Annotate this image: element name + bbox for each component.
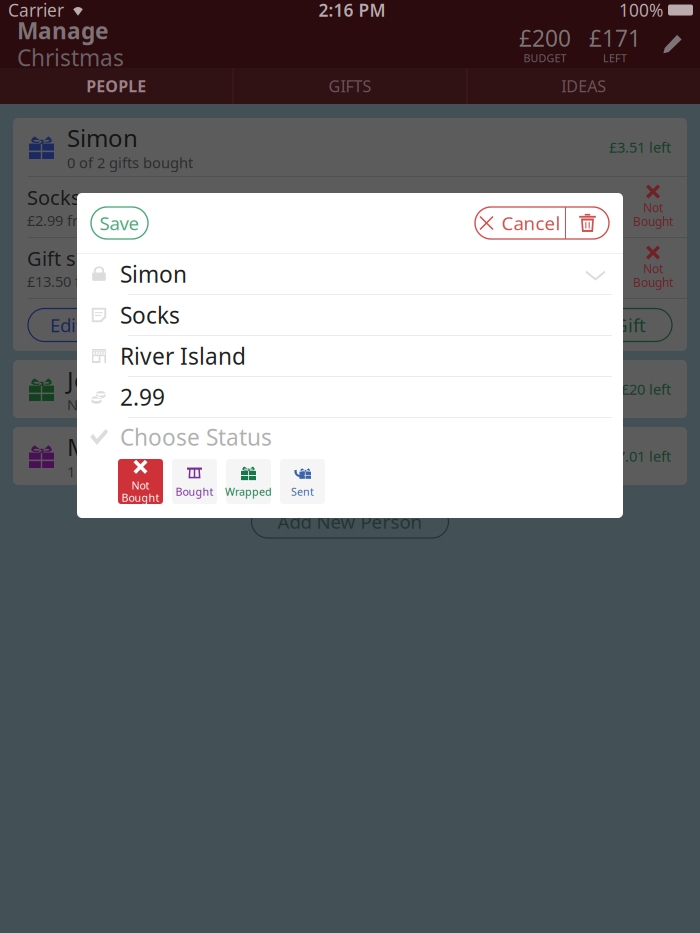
staticText: £2.99 from River Island [27, 210, 185, 230]
button[interactable]: Wrapped [226, 459, 271, 504]
staticText: Christmas [17, 42, 124, 73]
staticText: £20 left [621, 379, 671, 399]
staticText: £7.01 left [609, 446, 671, 466]
staticText: John [67, 364, 119, 396]
staticText: £3.51 left [609, 137, 671, 157]
staticText: £171 [589, 23, 641, 53]
staticText: Choose Status [120, 422, 272, 452]
staticText: PEOPLE [86, 75, 146, 97]
staticText: Carrier [8, 0, 64, 21]
button[interactable]: IDEAS [467, 68, 700, 104]
staticText: Add New Person [277, 509, 422, 534]
staticText: Bought [633, 213, 673, 229]
staticText: Not [643, 200, 663, 215]
staticText: 2.99 [120, 382, 165, 412]
button[interactable]: Sent [280, 459, 325, 504]
staticText: 0 of 2 gifts bought [67, 153, 193, 172]
button[interactable]: Edit Person [28, 308, 172, 341]
staticText: £200 [519, 23, 571, 53]
staticText: Not [131, 478, 149, 492]
staticText: Gift set [27, 245, 94, 272]
staticText: Socks [120, 300, 180, 330]
button[interactable]: PEOPLE [0, 68, 233, 104]
button[interactable]: Save [91, 207, 148, 239]
button[interactable]: Bought [172, 459, 217, 504]
staticText: Cancel [501, 211, 560, 235]
staticText: Manage [17, 15, 109, 45]
button[interactable]: Delete [566, 207, 609, 239]
staticText: Bought [633, 274, 673, 290]
button[interactable]: Not [118, 459, 163, 504]
staticText: Bought [121, 490, 159, 505]
staticText: Save [99, 211, 139, 235]
button[interactable]: Cancel [475, 207, 565, 239]
staticText: Wrapped [225, 484, 272, 499]
staticText: 1 of 1 gifts bought [67, 462, 193, 481]
staticText: 2:16 PM [318, 0, 385, 21]
staticText: Add Gift [575, 313, 646, 337]
staticText: No gifts yet [67, 395, 145, 414]
staticText: Sent [291, 484, 314, 499]
staticText: Edit Person [50, 313, 150, 337]
staticText: BUDGET [523, 51, 566, 65]
staticText: £13.50 from Boots [27, 271, 153, 291]
staticText: IDEAS [561, 75, 606, 97]
staticText: Socks [27, 184, 81, 211]
button[interactable]: Add Gift [549, 308, 672, 341]
button[interactable]: GIFTS [234, 68, 466, 104]
staticText: LEFT [603, 51, 627, 65]
staticText: River Island [120, 341, 246, 371]
staticText: Bought [175, 484, 213, 499]
staticText: Not [643, 261, 663, 276]
staticText: 100% [619, 0, 663, 21]
button[interactable]: Add New Person [251, 505, 448, 538]
button[interactable]: Edit [641, 24, 682, 63]
staticText: Simon [67, 122, 138, 154]
staticText: Mum [67, 431, 126, 463]
staticText: Simon [120, 259, 187, 289]
staticText: GIFTS [328, 75, 371, 97]
